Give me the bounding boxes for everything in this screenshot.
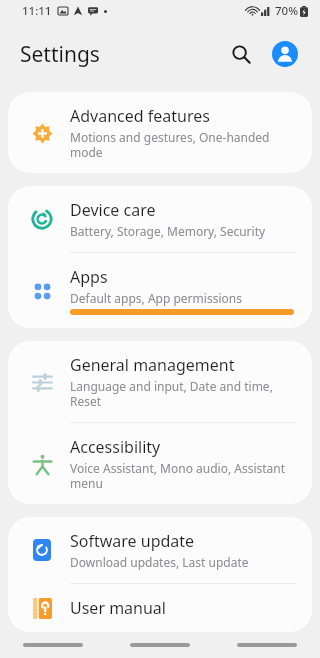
staticText: User manual xyxy=(70,597,166,619)
staticText: Device care xyxy=(70,199,156,221)
button[interactable]: General management xyxy=(8,341,312,422)
staticText: Software update xyxy=(70,530,195,552)
button[interactable]: Accessibility xyxy=(8,423,312,504)
button[interactable]: User manual xyxy=(8,584,312,632)
staticText: Motions and gestures, One-handed mode xyxy=(70,129,294,160)
staticText: Battery, Storage, Memory, Security xyxy=(70,223,266,239)
staticText: Accessibility xyxy=(70,436,161,458)
button[interactable]: Apps xyxy=(8,253,312,328)
button[interactable]: Recents xyxy=(23,643,83,647)
staticText: Download updates, Last update xyxy=(70,554,249,570)
staticText: Apps xyxy=(70,266,108,288)
staticText: 70% xyxy=(275,3,298,19)
staticText: 11:11 xyxy=(22,3,52,19)
button[interactable]: Device care xyxy=(8,186,312,252)
staticText: Voice Assistant, Mono audio, Assistant m… xyxy=(70,460,294,491)
button[interactable]: Account xyxy=(266,35,304,73)
button[interactable]: Software update xyxy=(8,517,312,583)
staticText: Settings xyxy=(20,40,100,69)
staticText: General management xyxy=(70,354,235,376)
button[interactable]: Back xyxy=(237,643,297,647)
staticText: Advanced features xyxy=(70,105,210,127)
button[interactable]: Advanced features xyxy=(8,92,312,173)
button[interactable]: Home xyxy=(130,643,190,647)
staticText: Language and input, Date and time, Reset xyxy=(70,378,294,409)
button[interactable]: Search xyxy=(222,35,260,73)
staticText: Default apps, App permissions xyxy=(70,290,242,306)
